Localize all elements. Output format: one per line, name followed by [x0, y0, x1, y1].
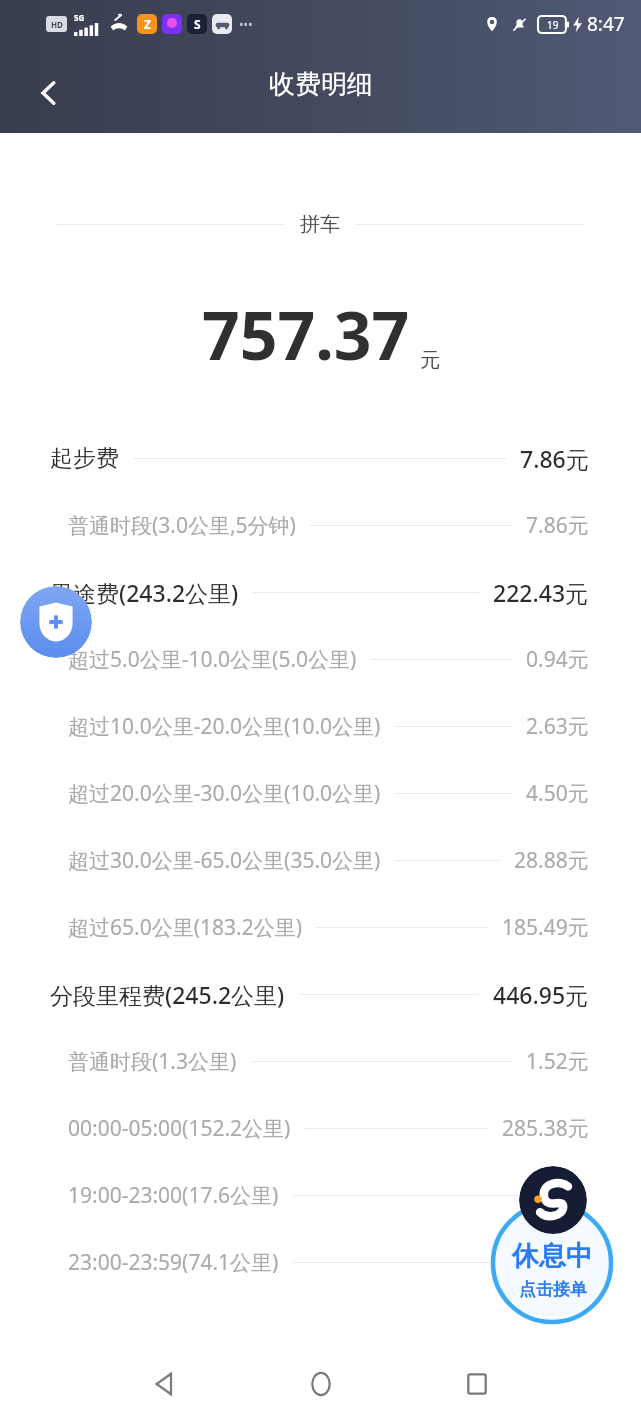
- button[interactable]: 里途费(243.2公里): [0, 559, 641, 626]
- staticText: 2.63元: [526, 712, 589, 741]
- staticText: 222.43元: [493, 577, 589, 608]
- button[interactable]: 起步费: [0, 425, 641, 492]
- staticText: 28.88元: [514, 846, 589, 875]
- staticText: 里途费(243.2公里): [50, 577, 239, 608]
- button[interactable]: 超过65.0公里(183.2公里): [0, 894, 641, 961]
- staticText: 超过10.0公里-20.0公里(10.0公里): [68, 712, 381, 741]
- staticText: 普通时段(3.0公里,5分钟): [68, 511, 296, 540]
- staticText: 超过5.0公里-10.0公里(5.0公里): [68, 645, 357, 674]
- button[interactable]: Back: [128, 1347, 202, 1421]
- staticText: 元: [420, 348, 440, 373]
- staticText: 超过30.0公里-65.0公里(35.0公里): [68, 846, 381, 875]
- staticText: 5G: [74, 12, 85, 23]
- staticText: 收费明细: [269, 68, 373, 101]
- button[interactable]: 00:00-05:00(152.2公里): [0, 1095, 641, 1162]
- staticText: 4.50元: [526, 779, 589, 808]
- staticText: 起步费: [50, 444, 119, 473]
- staticText: 普通时段(1.3公里): [68, 1047, 237, 1076]
- staticText: 8:47: [587, 11, 625, 37]
- button[interactable]: 超过10.0公里-20.0公里(10.0公里): [0, 693, 641, 760]
- staticText: 185.49元: [502, 913, 589, 942]
- staticText: 7.86元: [526, 511, 589, 540]
- staticText: 757.37: [202, 289, 410, 379]
- staticText: 点击接单: [519, 1279, 587, 1300]
- staticText: 23:00-23:59(74.1公里): [68, 1248, 279, 1277]
- staticText: 1.52元: [526, 1047, 589, 1076]
- staticText: 超过20.0公里-30.0公里(10.0公里): [68, 779, 381, 808]
- staticText: 446.95元: [493, 979, 589, 1010]
- staticText: 分段里程费(245.2公里): [50, 979, 285, 1010]
- button[interactable]: 超过20.0公里-30.0公里(10.0公里): [0, 760, 641, 827]
- staticText: 19:00-23:00(17.6公里): [68, 1181, 279, 1210]
- button[interactable]: 休息中: [489, 1200, 615, 1326]
- button[interactable]: 19:00-23:00(17.6公里): [0, 1162, 641, 1229]
- staticText: Z: [144, 16, 151, 32]
- button[interactable]: 分段里程费(245.2公里): [0, 961, 641, 1028]
- button[interactable]: 超过5.0公里-10.0公里(5.0公里): [0, 626, 641, 693]
- staticText: 7.86元: [520, 443, 589, 474]
- button[interactable]: 普通时段(1.3公里): [0, 1028, 641, 1095]
- staticText: 超过65.0公里(183.2公里): [68, 913, 302, 942]
- button[interactable]: App logo: [519, 1166, 587, 1234]
- staticText: 拼车: [300, 212, 340, 237]
- staticText: S: [194, 16, 201, 32]
- button[interactable]: 普通时段(3.0公里,5分钟): [0, 492, 641, 559]
- button[interactable]: 超过30.0公里-65.0公里(35.0公里): [0, 827, 641, 894]
- button[interactable]: Safety shield: [20, 586, 92, 658]
- staticText: •••: [239, 16, 253, 32]
- staticText: HD: [51, 19, 63, 30]
- button[interactable]: Recent apps: [440, 1347, 514, 1421]
- button[interactable]: Home: [284, 1347, 358, 1421]
- staticText: 19: [547, 18, 559, 32]
- staticText: 休息中: [512, 1239, 593, 1273]
- staticText: 00:00-05:00(152.2公里): [68, 1114, 291, 1143]
- staticText: 285.38元: [502, 1114, 589, 1143]
- button[interactable]: Back: [14, 58, 84, 128]
- staticText: 0.94元: [526, 645, 589, 674]
- button[interactable]: 23:00-23:59(74.1公里): [0, 1229, 641, 1296]
